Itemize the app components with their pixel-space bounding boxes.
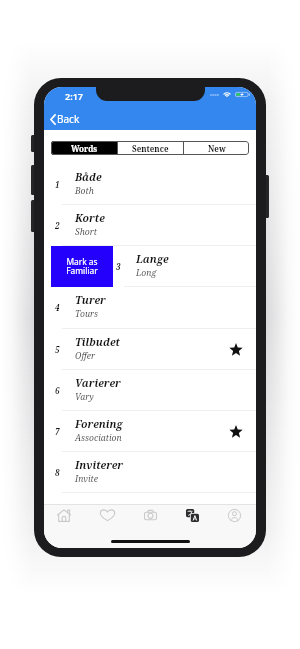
- staticText: 1: [55, 179, 60, 190]
- button[interactable]: New: [184, 141, 249, 155]
- staticText: Vary: [75, 391, 94, 403]
- button[interactable]: Favorites: [92, 505, 123, 529]
- button[interactable]: Back: [48, 111, 82, 127]
- button[interactable]: Profile: [220, 505, 249, 529]
- staticText: 5: [55, 344, 60, 355]
- staticText: Forening: [75, 417, 123, 431]
- button[interactable]: 1: [44, 164, 256, 205]
- staticText: Tours: [75, 308, 99, 320]
- button[interactable]: Mark as Familiar: [44, 246, 256, 287]
- button[interactable]: 2: [44, 205, 256, 246]
- staticText: Both: [75, 185, 94, 197]
- staticText: Short: [75, 226, 97, 238]
- button[interactable]: 7: [44, 411, 256, 452]
- button[interactable]: 4: [44, 287, 256, 328]
- button[interactable]: Words: [51, 141, 117, 155]
- staticText: 6: [55, 385, 60, 396]
- staticText: 4: [55, 302, 60, 313]
- staticText: Korte: [75, 211, 105, 225]
- staticText: Tilbudet: [75, 335, 120, 349]
- staticText: New: [208, 143, 226, 154]
- staticText: Lange: [136, 252, 169, 266]
- button[interactable]: Camera: [136, 505, 165, 529]
- staticText: Varierer: [75, 376, 121, 390]
- staticText: Words: [71, 143, 98, 154]
- staticText: Mark as Familiar: [66, 256, 98, 277]
- staticText: Både: [75, 170, 102, 184]
- staticText: Long: [136, 267, 157, 279]
- button[interactable]: Sentence: [118, 141, 183, 155]
- staticText: 3: [116, 261, 121, 272]
- button[interactable]: 6: [44, 370, 256, 411]
- button[interactable]: 5: [44, 329, 256, 370]
- button[interactable]: Translate: [178, 505, 207, 529]
- staticText: 8: [55, 467, 60, 478]
- staticText: Invite: [75, 473, 98, 485]
- button[interactable]: Home: [49, 505, 79, 529]
- staticText: Sentence: [132, 143, 169, 154]
- staticText: 2:17: [65, 90, 83, 102]
- staticText: Back: [57, 112, 80, 126]
- staticText: 7: [55, 426, 60, 437]
- button[interactable]: 8: [44, 452, 256, 493]
- staticText: Turer: [75, 293, 106, 307]
- staticText: Association: [75, 432, 122, 444]
- staticText: Inviterer: [75, 458, 124, 472]
- button[interactable]: Mark as Familiar: [51, 246, 113, 287]
- staticText: Offer: [75, 350, 95, 362]
- staticText: 2: [55, 220, 60, 231]
